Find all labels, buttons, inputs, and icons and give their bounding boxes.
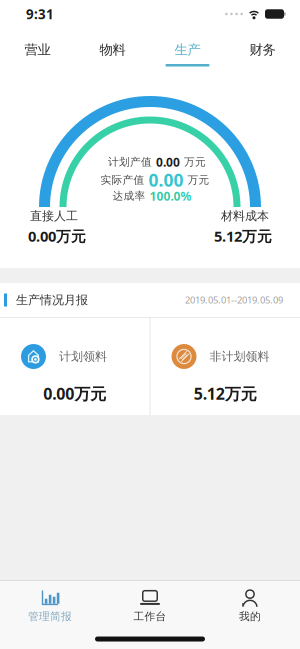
button[interactable]: 工作台 — [100, 589, 200, 623]
staticText: 计划领料 — [59, 349, 107, 364]
staticText: 达成率 — [112, 189, 145, 202]
button[interactable]: 物料 — [75, 28, 150, 68]
button[interactable]: 管理简报 — [0, 589, 100, 623]
staticText: 5.12万元 — [214, 226, 272, 246]
staticText: 0.00万元 — [28, 226, 86, 246]
staticText: 生产情况月报 — [16, 293, 88, 307]
staticText: 财务 — [249, 42, 275, 58]
staticText: 0.00 — [156, 154, 180, 170]
button[interactable]: 计划领料 — [0, 318, 149, 415]
staticText: 实际产值 — [100, 173, 144, 186]
staticText: 材料成本 — [221, 209, 269, 223]
staticText: 0.00万元 — [43, 383, 106, 404]
staticText: 生产 — [174, 42, 200, 58]
staticText: 管理简报 — [28, 610, 72, 623]
button[interactable]: 我的 — [200, 589, 300, 623]
staticText: 0.00 — [148, 168, 183, 191]
staticText: 2019.05.01--2019.05.09 — [185, 294, 283, 306]
button[interactable]: 财务 — [225, 28, 300, 68]
staticText: 万元 — [187, 173, 209, 186]
staticText: 9:31 — [26, 5, 54, 23]
button[interactable]: 营业 — [0, 28, 75, 68]
staticText: 非计划领料 — [209, 349, 269, 364]
staticText: 万元 — [184, 155, 206, 168]
button[interactable]: 非计划领料 — [150, 318, 300, 415]
button[interactable]: 生产 — [150, 28, 225, 68]
staticText: 我的 — [239, 610, 261, 623]
staticText: 营业 — [24, 42, 50, 58]
staticText: 计划产值 — [108, 155, 152, 168]
staticText: 5.12万元 — [194, 383, 257, 404]
staticText: 物料 — [99, 42, 125, 58]
staticText: 100.0% — [149, 188, 191, 204]
staticText: 直接人工 — [30, 209, 78, 223]
staticText: 工作台 — [133, 610, 166, 623]
